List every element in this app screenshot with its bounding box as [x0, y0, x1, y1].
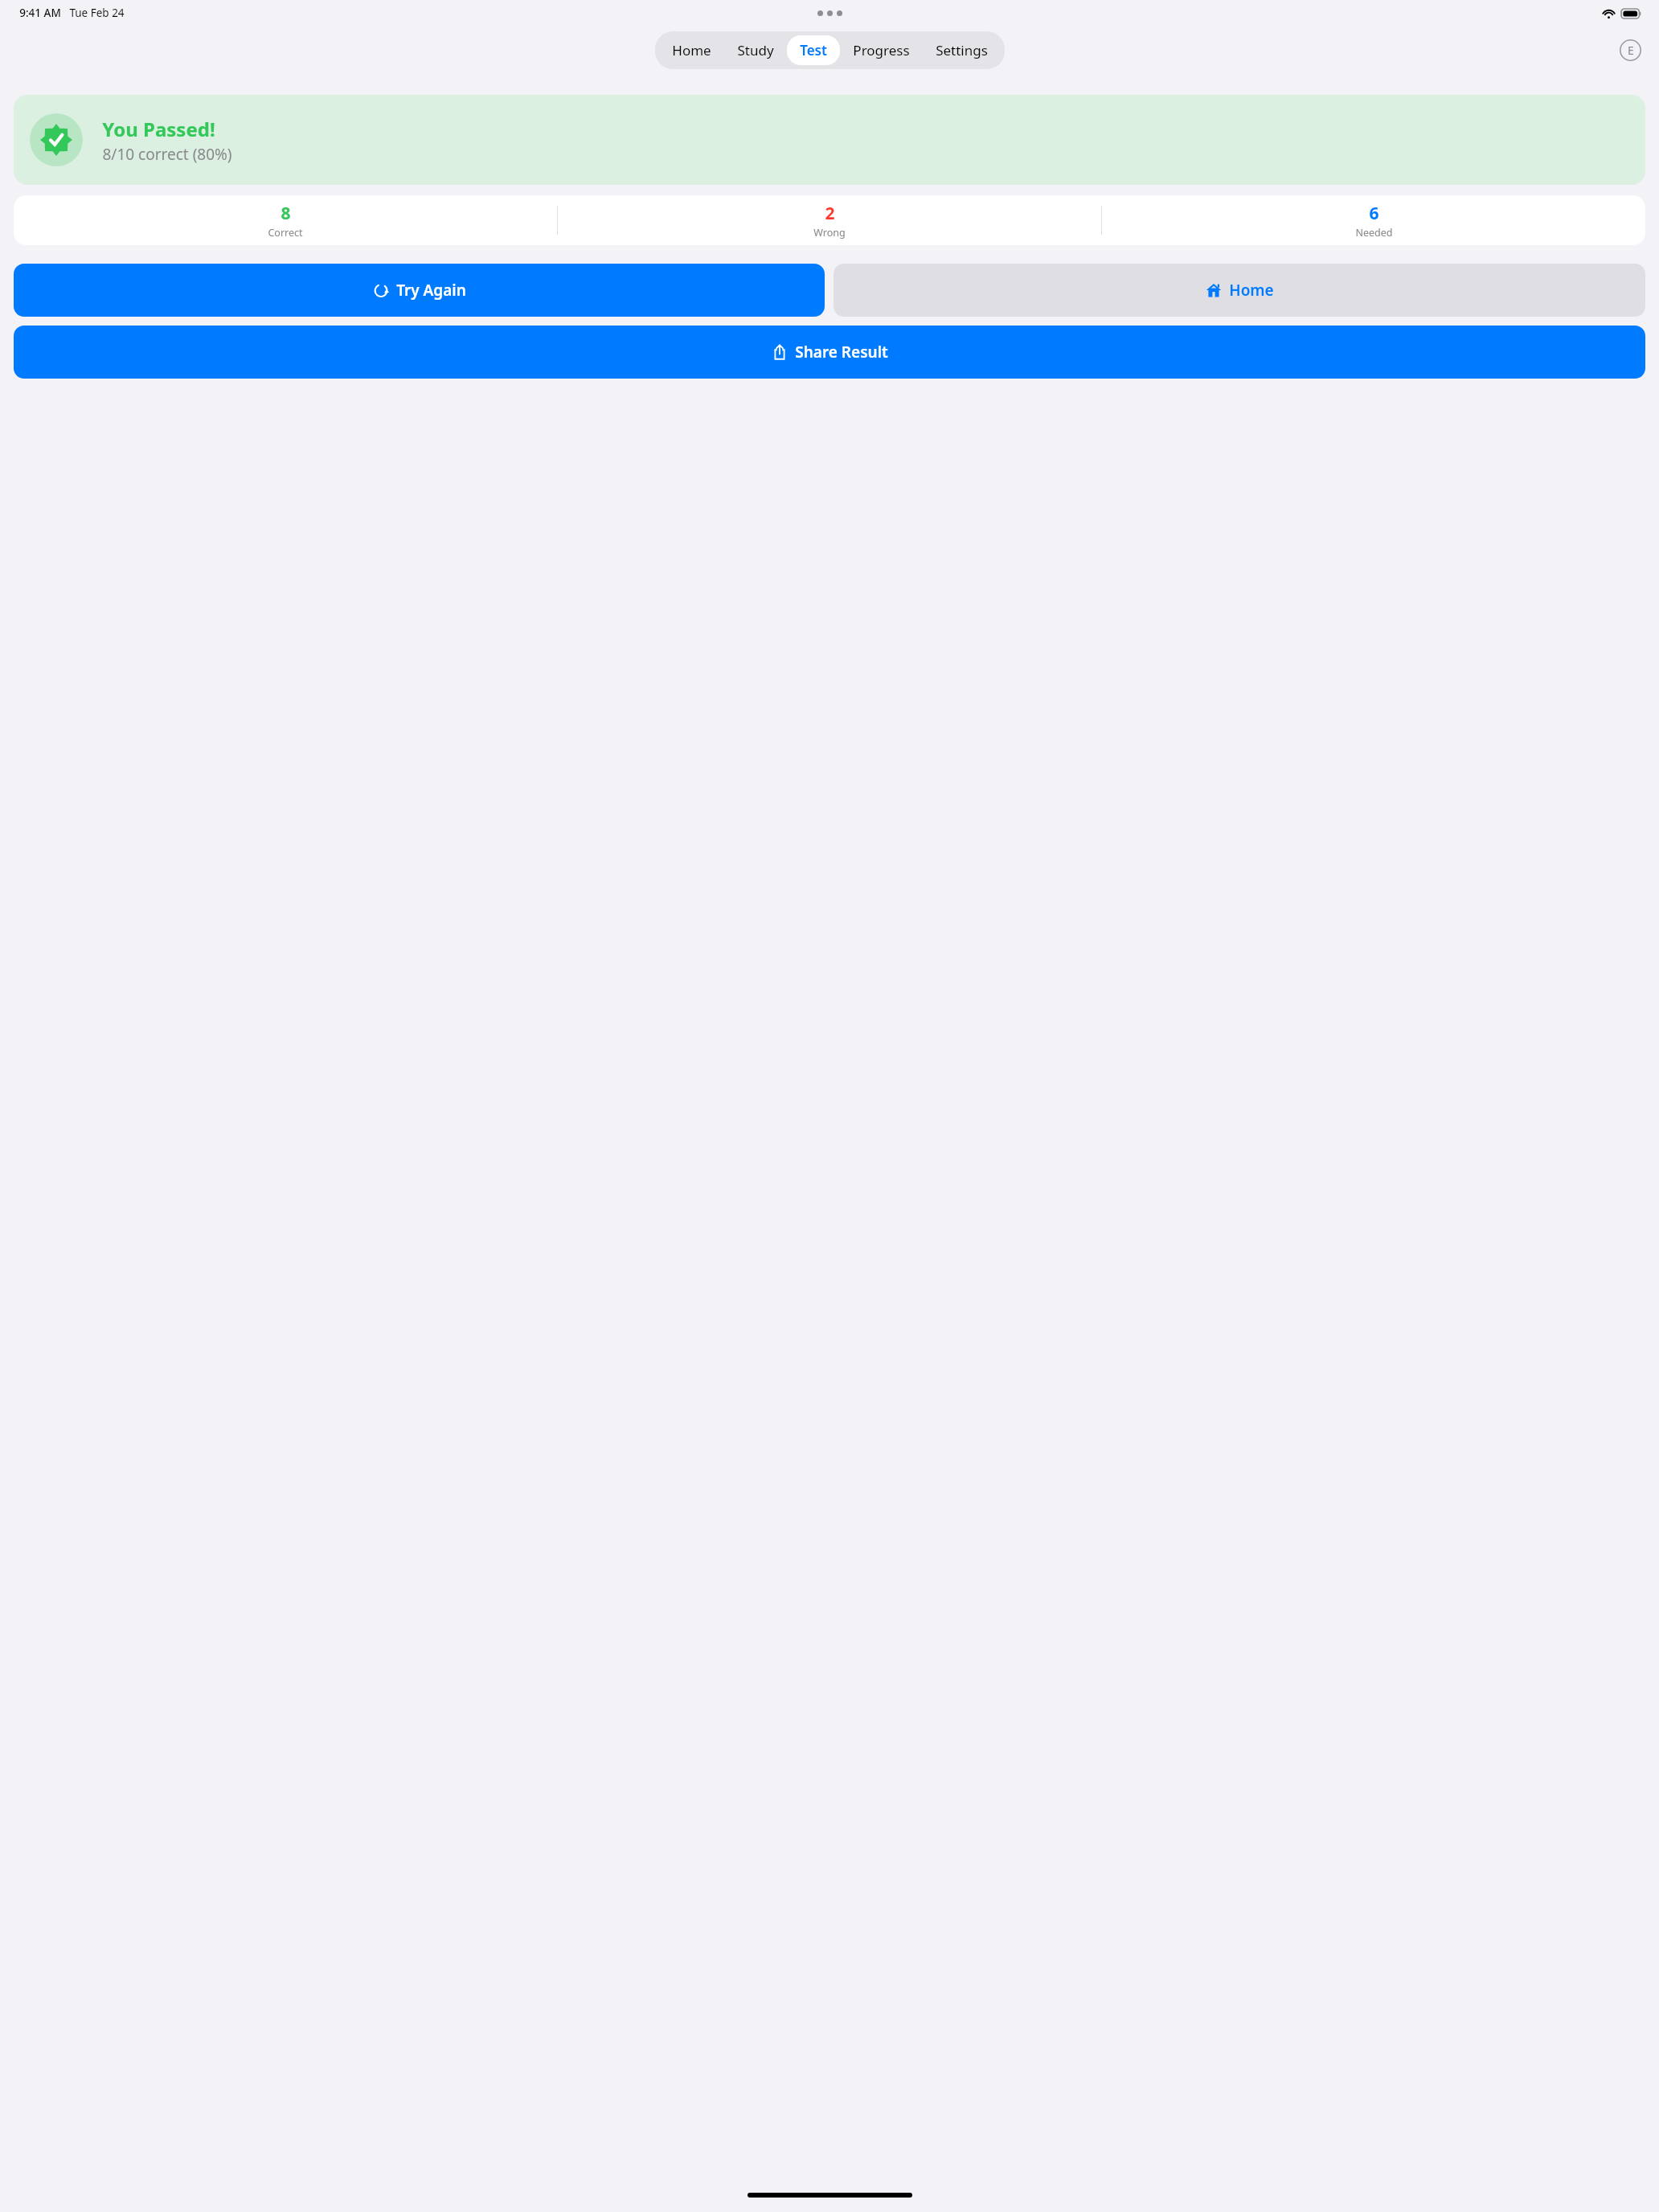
- button[interactable]: Home: [659, 35, 724, 65]
- staticText: Wrong: [813, 226, 846, 240]
- button[interactable]: Progress: [840, 35, 923, 65]
- button[interactable]: 8: [14, 199, 557, 243]
- staticText: E: [1628, 43, 1634, 58]
- staticText: You Passed!: [102, 116, 215, 142]
- staticText: Test: [800, 41, 827, 59]
- staticText: 8/10 correct (80%): [102, 144, 232, 165]
- staticText: Correct: [268, 226, 303, 240]
- button[interactable]: 2: [558, 199, 1101, 243]
- staticText: 6: [1369, 202, 1379, 225]
- staticText: Try Again: [396, 280, 466, 301]
- button[interactable]: Share Result: [14, 326, 1645, 379]
- staticText: Home: [672, 41, 711, 59]
- button[interactable]: Profile: [1620, 39, 1641, 61]
- button[interactable]: You Passed!: [14, 95, 1645, 185]
- staticText: Tue Feb 24: [69, 6, 125, 20]
- staticText: Needed: [1355, 226, 1393, 240]
- staticText: 9:41 AM: [19, 6, 61, 20]
- staticText: Study: [737, 41, 774, 59]
- button[interactable]: Test: [787, 35, 840, 65]
- button[interactable]: Try Again: [14, 264, 825, 317]
- button[interactable]: Home: [834, 264, 1645, 317]
- button[interactable]: Settings: [923, 35, 1001, 65]
- staticText: Home: [1229, 280, 1274, 301]
- button[interactable]: Study: [724, 35, 787, 65]
- staticText: 8: [281, 202, 291, 225]
- staticText: Settings: [936, 41, 988, 59]
- staticText: Progress: [853, 41, 910, 59]
- staticText: Share Result: [795, 342, 888, 363]
- staticText: 2: [825, 202, 835, 225]
- button[interactable]: 6: [1102, 199, 1645, 243]
